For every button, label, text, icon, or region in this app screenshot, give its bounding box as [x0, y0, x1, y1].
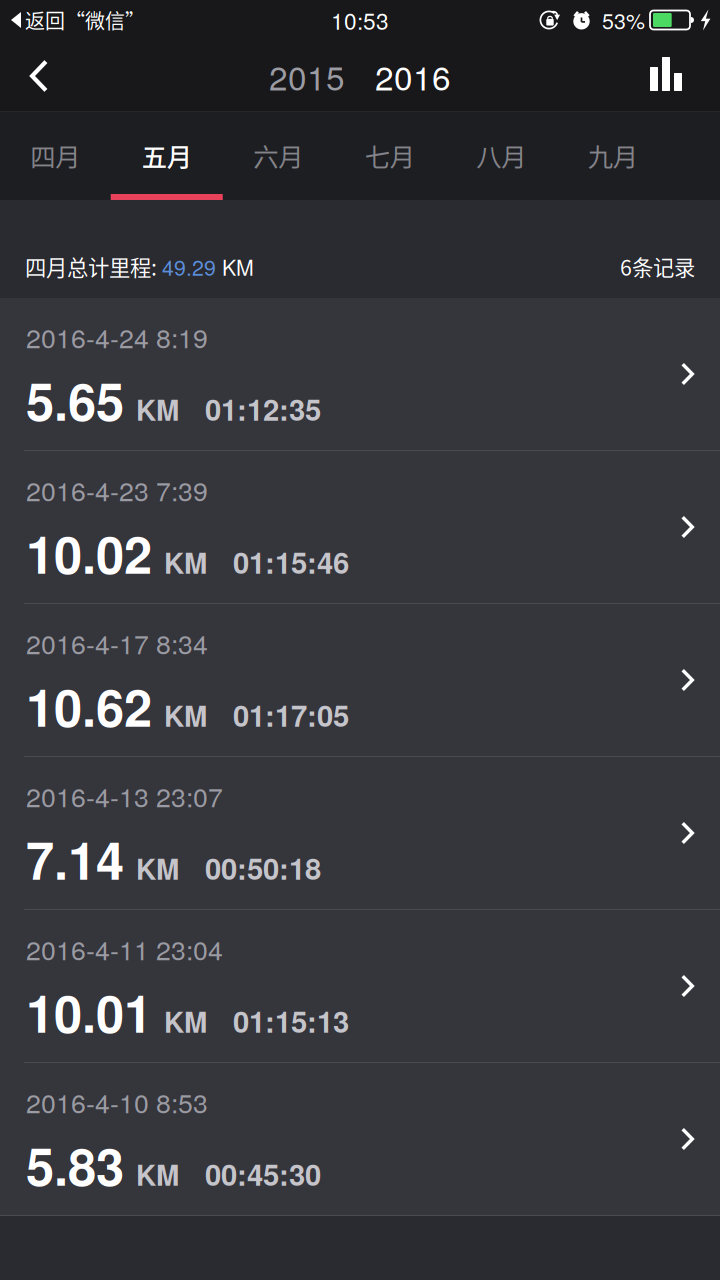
button[interactable]: 2016-4-17 8:34	[0, 604, 720, 757]
staticText: 01:12:35	[205, 388, 321, 430]
staticText: 10.02	[26, 517, 152, 589]
button[interactable]: 2016-4-10 8:53	[0, 1063, 720, 1216]
staticText: 5.83	[26, 1129, 124, 1201]
button[interactable]: 四月	[0, 112, 111, 200]
staticText: 六月	[253, 137, 303, 174]
staticText: 九月	[588, 137, 638, 174]
staticText: 53%	[602, 5, 645, 35]
button[interactable]: 九月	[557, 112, 668, 200]
staticText: 01:17:05	[233, 694, 349, 736]
button[interactable]: Back	[0, 40, 78, 111]
button[interactable]: 2016	[360, 46, 466, 106]
button[interactable]: 2016-4-11 23:04	[0, 910, 720, 1063]
staticText: 00:45:30	[205, 1153, 321, 1195]
staticText: 2016-4-11 23:04	[26, 930, 223, 968]
staticText: 6条记录	[620, 251, 695, 282]
button[interactable]: 2016-4-13 23:07	[0, 757, 720, 910]
staticText: 2016-4-13 23:07	[26, 777, 223, 815]
staticText: 5.65	[26, 364, 124, 436]
staticText: 四月总计里程:	[25, 251, 162, 282]
staticText: 01:15:13	[233, 1000, 349, 1042]
staticText: 00:50:18	[205, 847, 321, 889]
staticText: 七月	[365, 137, 415, 174]
button[interactable]: 2016-4-24 8:19	[0, 298, 720, 451]
staticText: 7.14	[26, 823, 124, 895]
staticText: 返回“微信”	[25, 5, 145, 34]
staticText: 01:15:46	[233, 541, 349, 583]
staticText: 2016-4-23 7:39	[26, 471, 208, 509]
staticText: 10.62	[26, 670, 152, 742]
staticText: 四月	[30, 137, 80, 174]
button[interactable]: 返回“微信”	[0, 0, 145, 40]
staticText: 2016-4-24 8:19	[26, 318, 208, 356]
staticText: 10:53	[331, 4, 389, 36]
staticText: KM	[136, 1154, 179, 1194]
button[interactable]: 2016-4-23 7:39	[0, 451, 720, 604]
staticText: 2015	[269, 52, 345, 100]
staticText: 八月	[476, 137, 526, 174]
staticText: 2016	[375, 52, 451, 100]
button[interactable]: 六月	[222, 112, 334, 200]
staticText: 2016-4-10 8:53	[26, 1083, 208, 1121]
staticText: 49.29	[162, 251, 216, 282]
staticText: KM	[164, 695, 207, 735]
staticText: KM	[136, 848, 179, 888]
button[interactable]: 五月	[111, 112, 222, 200]
button[interactable]: 七月	[334, 112, 445, 200]
staticText: 五月	[142, 137, 192, 174]
staticText: KM	[164, 1001, 207, 1041]
staticText: KM	[164, 542, 207, 582]
staticText: KM	[136, 389, 179, 429]
staticText: 10.01	[26, 976, 152, 1048]
button[interactable]: 八月	[445, 112, 557, 200]
button[interactable]: 2015	[254, 46, 360, 106]
staticText: 2016-4-17 8:34	[26, 624, 208, 662]
button[interactable]: Statistics	[631, 38, 720, 113]
staticText: KM	[216, 251, 254, 282]
